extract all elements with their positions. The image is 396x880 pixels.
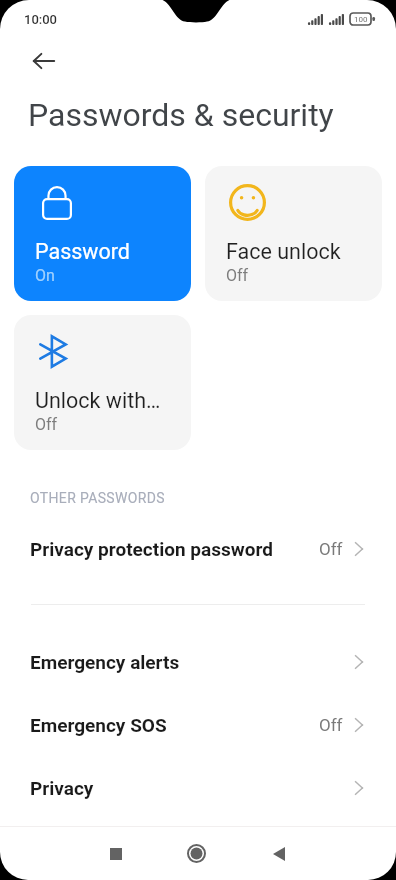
button[interactable]: Back <box>24 41 64 81</box>
staticText: Passwords & security <box>28 96 334 134</box>
staticText: Password <box>35 239 130 264</box>
staticText: Off <box>226 266 249 285</box>
button[interactable]: Privacy <box>0 756 396 819</box>
button[interactable]: Recents <box>93 831 138 876</box>
staticText: Unlock with… <box>35 388 161 413</box>
staticText: Off <box>319 715 343 735</box>
button[interactable]: Unlock with… <box>14 315 191 450</box>
button[interactable]: Password <box>14 166 191 301</box>
staticText: 10:00 <box>24 12 58 27</box>
staticText: Off <box>319 539 343 559</box>
staticText: Face unlock <box>226 239 341 264</box>
staticText: OTHER PASSWORDS <box>30 490 165 506</box>
staticText: Emergency alerts <box>30 651 355 673</box>
button[interactable]: Privacy protection password <box>0 517 396 580</box>
staticText: Privacy protection password <box>30 538 319 560</box>
button[interactable]: Home <box>174 831 219 876</box>
staticText: Off <box>35 415 58 434</box>
staticText: Privacy <box>30 777 355 799</box>
button[interactable]: Emergency SOS <box>0 693 396 756</box>
staticText: On <box>35 266 55 285</box>
staticText: 100 <box>354 15 368 24</box>
staticText: Emergency SOS <box>30 714 319 736</box>
button[interactable]: Emergency alerts <box>0 630 396 693</box>
button[interactable]: Back <box>256 831 301 876</box>
button[interactable]: Face unlock <box>205 166 382 301</box>
